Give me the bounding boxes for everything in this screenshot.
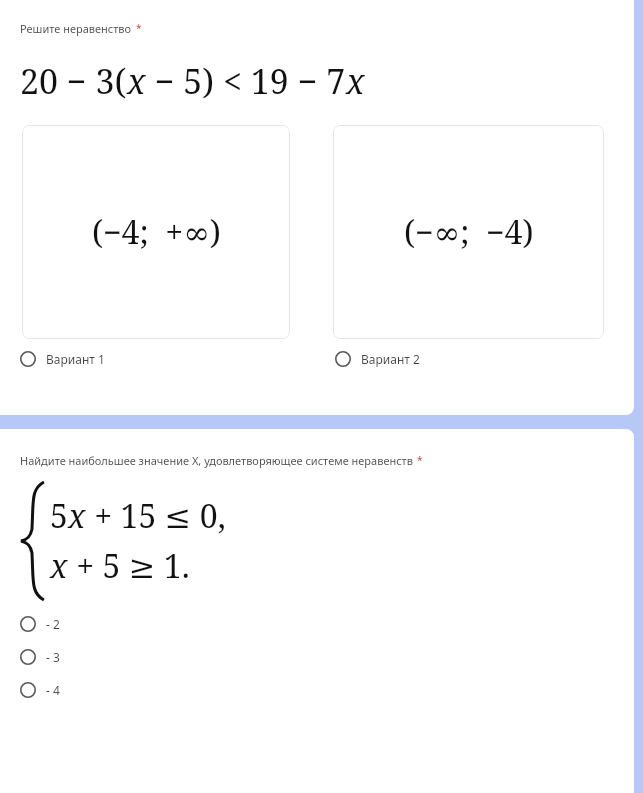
staticText: x (127, 58, 146, 104)
staticText: Вариант 2 (361, 351, 420, 367)
staticText: x (346, 58, 365, 104)
staticText: * (417, 453, 423, 467)
staticText: − 5) < 19 − 7 (146, 58, 346, 104)
staticText: - 3 (46, 649, 60, 665)
staticText: (−∞; −4) (404, 210, 534, 254)
staticText: Решите неравенство (20, 21, 132, 36)
staticText: + 5 ≥ 1. (68, 544, 190, 588)
button[interactable]: - 4 (20, 680, 60, 700)
staticText: - 2 (46, 616, 60, 632)
staticText: 20 − 3( (20, 58, 127, 104)
button[interactable]: - 2 (20, 614, 60, 634)
staticText: + 15 ≤ 0, (86, 494, 226, 538)
staticText: * (136, 21, 142, 35)
staticText: x (50, 544, 68, 588)
button[interactable]: Вариант 2 (335, 349, 420, 369)
button[interactable]: (−4; +∞) (22, 125, 290, 339)
staticText: x (68, 494, 86, 538)
staticText: Вариант 1 (46, 351, 105, 367)
staticText: (−4; +∞) (92, 210, 221, 254)
button[interactable]: Вариант 1 (20, 349, 105, 369)
button[interactable]: - 3 (20, 647, 60, 667)
staticText: - 4 (46, 682, 60, 698)
staticText: 5 (50, 494, 68, 538)
staticText: Найдите наибольшее значение X, удовлетво… (20, 453, 413, 468)
button[interactable]: (−∞; −4) (333, 125, 604, 339)
